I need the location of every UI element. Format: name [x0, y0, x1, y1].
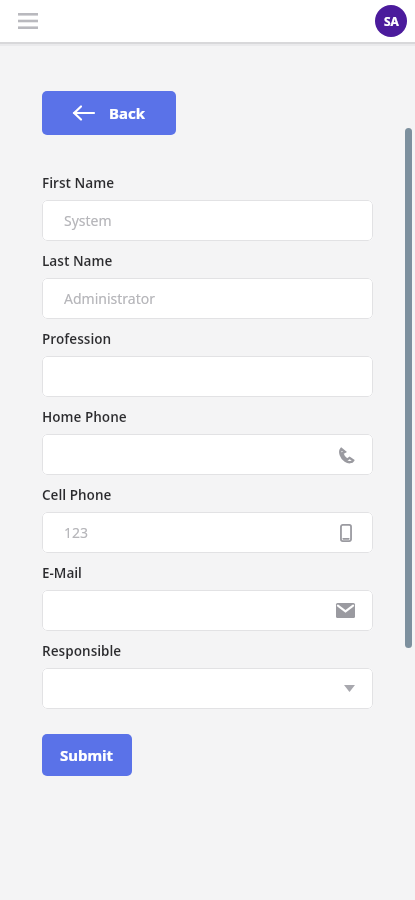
staticText: Last Name [42, 252, 113, 270]
staticText: 123 [64, 523, 89, 542]
staticText: First Name [42, 174, 115, 192]
button[interactable]: System [42, 200, 373, 241]
button[interactable]: Menu [10, 3, 46, 39]
staticText: Responsible [42, 642, 122, 660]
button[interactable]: Submit [42, 734, 132, 776]
button[interactable] [42, 590, 373, 631]
button[interactable]: 123 [42, 512, 373, 553]
button[interactable] [42, 356, 373, 397]
staticText: Profession [42, 330, 112, 348]
staticText: E-Mail [42, 564, 82, 582]
staticText: SA [384, 13, 399, 29]
staticText: Submit [60, 745, 114, 765]
staticText: Home Phone [42, 408, 127, 426]
button[interactable]: Back [42, 91, 176, 135]
staticText: System [64, 211, 112, 230]
button[interactable] [42, 434, 373, 475]
staticText: Back [109, 103, 146, 123]
button[interactable] [42, 668, 373, 709]
button[interactable]: Account [375, 5, 407, 37]
button[interactable]: Administrator [42, 278, 373, 319]
staticText: Administrator [64, 289, 155, 308]
staticText: Cell Phone [42, 486, 112, 504]
